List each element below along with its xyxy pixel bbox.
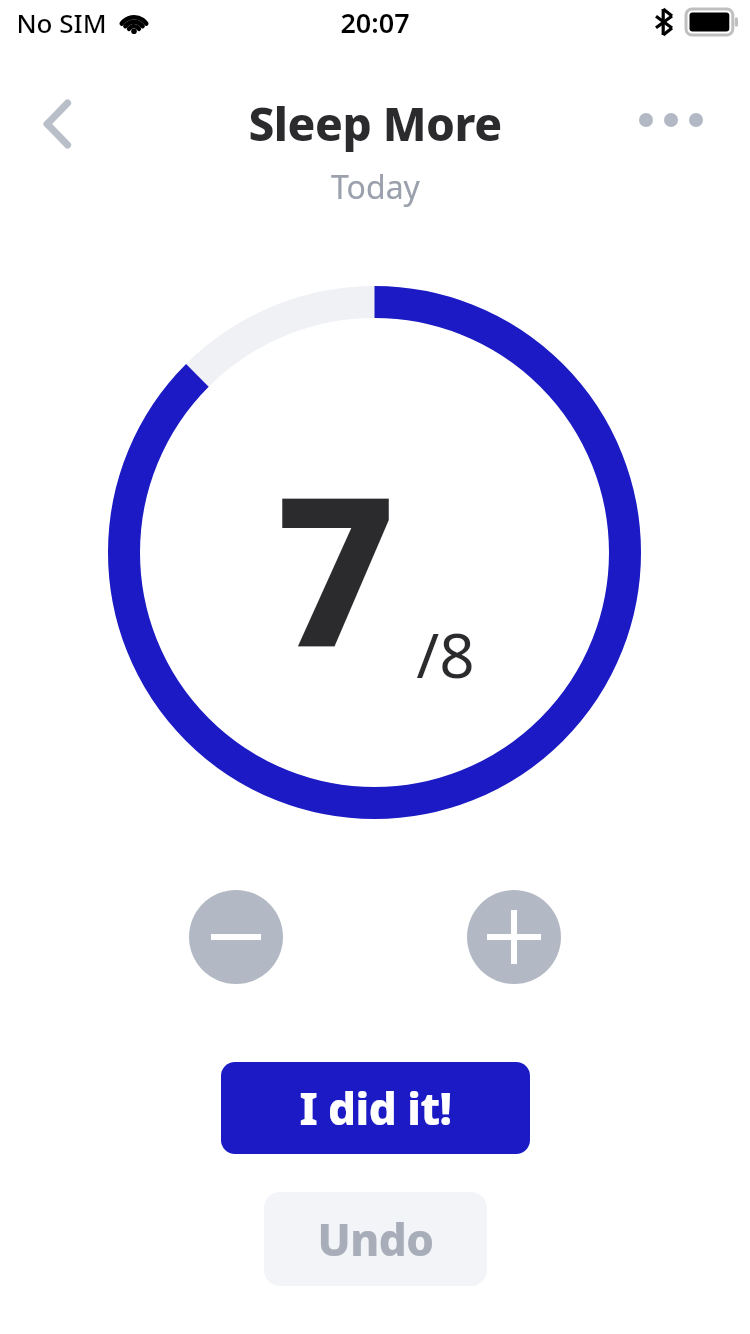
staticText: /8 — [416, 612, 475, 696]
staticText: 20:07 — [340, 4, 410, 41]
button[interactable]: I did it! — [221, 1062, 530, 1154]
button[interactable]: Back — [22, 88, 94, 160]
staticText: Sleep More — [248, 92, 502, 155]
staticText: 7 — [275, 425, 394, 708]
button[interactable]: Increase — [467, 890, 561, 984]
button[interactable]: More options — [628, 86, 714, 154]
button[interactable]: Undo — [264, 1192, 487, 1286]
button[interactable]: Decrease — [189, 890, 283, 984]
staticText: No SIM — [16, 5, 107, 40]
staticText: I did it! — [299, 1078, 452, 1138]
staticText: Today — [331, 165, 420, 209]
staticText: Undo — [317, 1209, 434, 1269]
